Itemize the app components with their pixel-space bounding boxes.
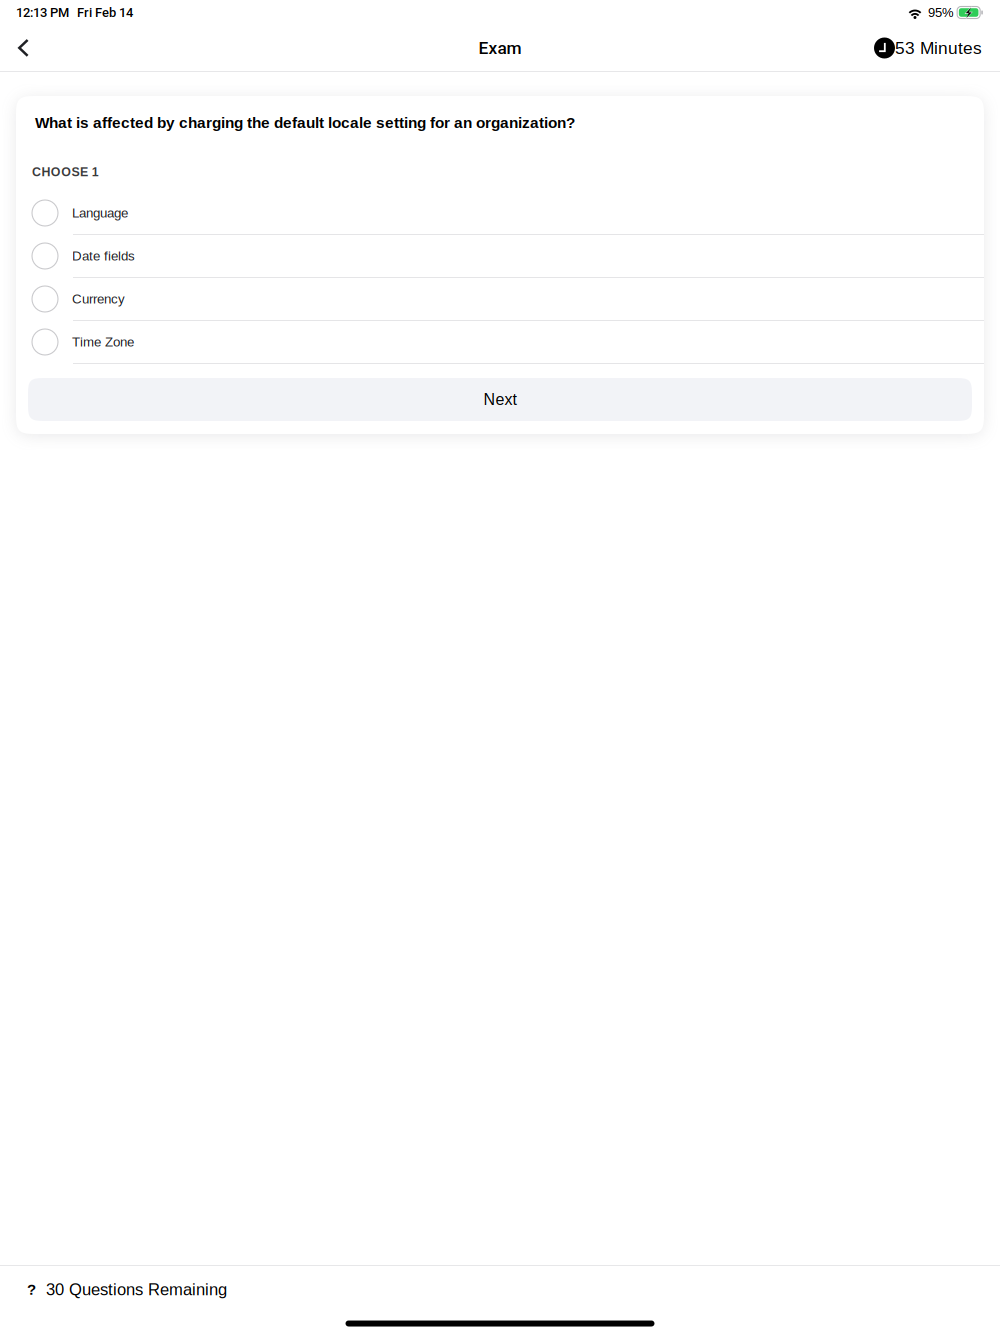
staticText: Next (483, 391, 516, 408)
button[interactable]: Currency (16, 278, 984, 321)
staticText: 95% (928, 5, 954, 20)
button[interactable]: ? (0, 1272, 227, 1307)
staticText: 30 Questions Remaining (46, 1280, 227, 1299)
button[interactable]: Date fields (16, 235, 984, 278)
staticText: Exam (478, 38, 521, 58)
staticText: 12:13 PM (16, 5, 69, 20)
button[interactable]: Back (0, 28, 47, 68)
staticText: Currency (72, 292, 125, 306)
button[interactable]: 53 Minutes (874, 29, 1000, 67)
staticText: Date fields (72, 249, 135, 263)
button[interactable]: Next (28, 378, 972, 421)
button[interactable]: Time Zone (16, 321, 984, 364)
staticText: 53 Minutes (895, 38, 982, 58)
staticText: What is affected by charging the default… (35, 114, 575, 131)
staticText: Fri Feb 14 (77, 5, 133, 20)
staticText: Language (72, 206, 128, 220)
staticText: Time Zone (72, 335, 134, 349)
button[interactable]: Language (16, 192, 984, 235)
staticText: ? (27, 1281, 36, 1298)
staticText: CHOOSE 1 (32, 165, 99, 179)
